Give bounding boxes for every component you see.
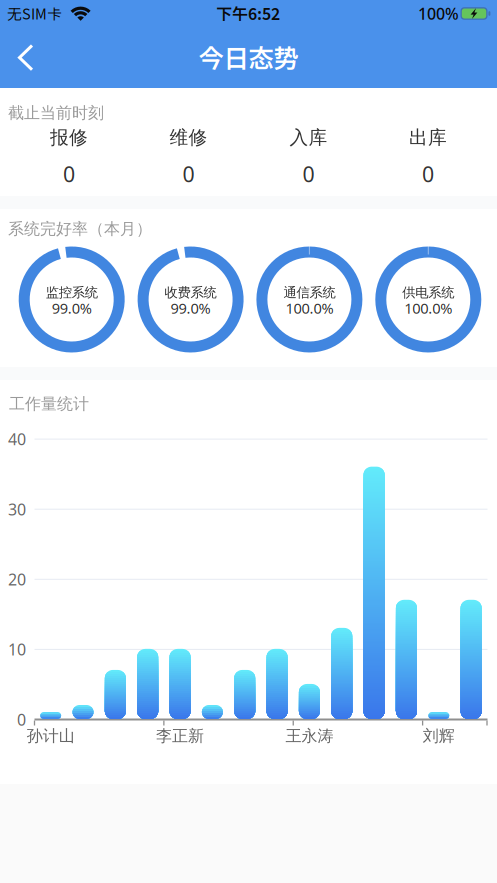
staticText: 李正新 xyxy=(156,726,204,746)
staticText: 99.0% xyxy=(52,298,92,318)
staticText: 无SIM卡 xyxy=(7,5,62,23)
staticText: 0 xyxy=(422,160,434,188)
staticText: 0 xyxy=(183,160,195,188)
staticText: 入库 xyxy=(289,126,327,149)
staticText: 供电系统 xyxy=(402,284,454,301)
staticText: 30 xyxy=(8,499,26,520)
staticText: 10 xyxy=(8,639,26,660)
staticText: 20 xyxy=(8,569,26,590)
staticText: 王永涛 xyxy=(285,726,333,746)
staticText: 0 xyxy=(17,709,26,730)
staticText: 100.0% xyxy=(404,298,452,318)
staticText: 维修 xyxy=(170,126,208,149)
staticText: 工作量统计 xyxy=(9,394,89,414)
staticText: 下午6:52 xyxy=(216,5,280,23)
button[interactable]: Back xyxy=(4,34,48,82)
staticText: 99.0% xyxy=(171,298,211,318)
staticText: 刘辉 xyxy=(423,726,455,746)
staticText: 监控系统 xyxy=(46,284,98,301)
staticText: 系统完好率（本月） xyxy=(8,219,152,239)
staticText: 报修 xyxy=(50,126,88,149)
staticText: 收费系统 xyxy=(165,284,217,301)
staticText: 40 xyxy=(8,428,26,450)
staticText: 通信系统 xyxy=(283,284,335,301)
staticText: 今日态势 xyxy=(198,43,298,73)
staticText: 出库 xyxy=(409,126,447,149)
staticText: 截止当前时刻 xyxy=(8,103,104,123)
staticText: 100% xyxy=(418,3,459,24)
staticText: 100.0% xyxy=(285,298,333,318)
staticText: 0 xyxy=(302,160,314,188)
staticText: 0 xyxy=(63,160,75,188)
staticText: 孙计山 xyxy=(27,726,75,746)
